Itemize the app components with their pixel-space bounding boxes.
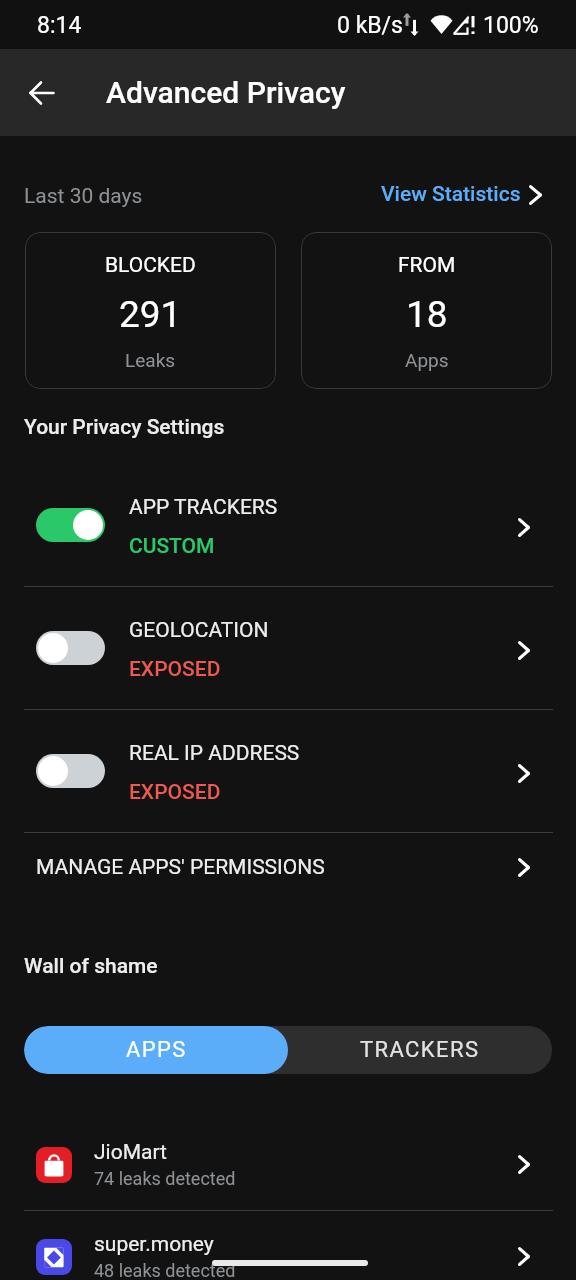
staticText: APP TRACKERS (129, 495, 278, 520)
button[interactable]: Switch on (0, 466, 576, 588)
staticText: GEOLOCATION (129, 618, 269, 643)
button[interactable]: Switch off (36, 631, 105, 665)
staticText: Last 30 days (24, 184, 143, 209)
staticText: REAL IP ADDRESS (129, 741, 300, 766)
staticText: Apps (405, 349, 449, 371)
staticText: MANAGE APPS' PERMISSIONS (36, 855, 325, 880)
staticText: APPS (126, 1037, 187, 1063)
button[interactable]: APPS (24, 1026, 288, 1074)
staticText: CUSTOM (129, 534, 215, 559)
button[interactable]: Switch off (0, 589, 576, 711)
staticText: 291 (119, 293, 182, 336)
staticText: EXPOSED (129, 780, 221, 805)
button[interactable]: super.money (0, 1211, 576, 1280)
button[interactable]: Switch off (36, 754, 105, 788)
staticText: Leaks (125, 349, 176, 371)
staticText: Your Privacy Settings (24, 415, 225, 440)
button[interactable]: FROM (301, 232, 552, 389)
staticText: Advanced Privacy (106, 75, 346, 110)
staticText: 74 leaks detected (94, 1168, 236, 1189)
staticText: 48 leaks detected (94, 1260, 236, 1280)
staticText: TRACKERS (360, 1037, 480, 1063)
staticText: EXPOSED (129, 657, 221, 682)
button[interactable]: JioMart (0, 1119, 576, 1210)
button[interactable]: Switch off (0, 712, 576, 834)
button[interactable]: BLOCKED (25, 232, 276, 389)
staticText: Wall of shame (24, 954, 158, 979)
staticText: BLOCKED (105, 253, 196, 278)
staticText: View Statistics (381, 182, 521, 207)
button[interactable]: Back (18, 69, 66, 117)
staticText: 0 kB/s (337, 12, 403, 39)
staticText: 18 (406, 293, 448, 336)
button[interactable]: TRACKERS (288, 1026, 552, 1074)
staticText: FROM (398, 253, 456, 278)
staticText: JioMart (94, 1140, 167, 1165)
button[interactable]: View Statistics (381, 182, 542, 207)
staticText: super.money (94, 1232, 214, 1257)
staticText: 100% (483, 12, 539, 39)
button[interactable]: MANAGE APPS' PERMISSIONS (0, 833, 576, 901)
button[interactable]: Switch on (36, 508, 105, 542)
staticText: 8:14 (37, 12, 82, 39)
